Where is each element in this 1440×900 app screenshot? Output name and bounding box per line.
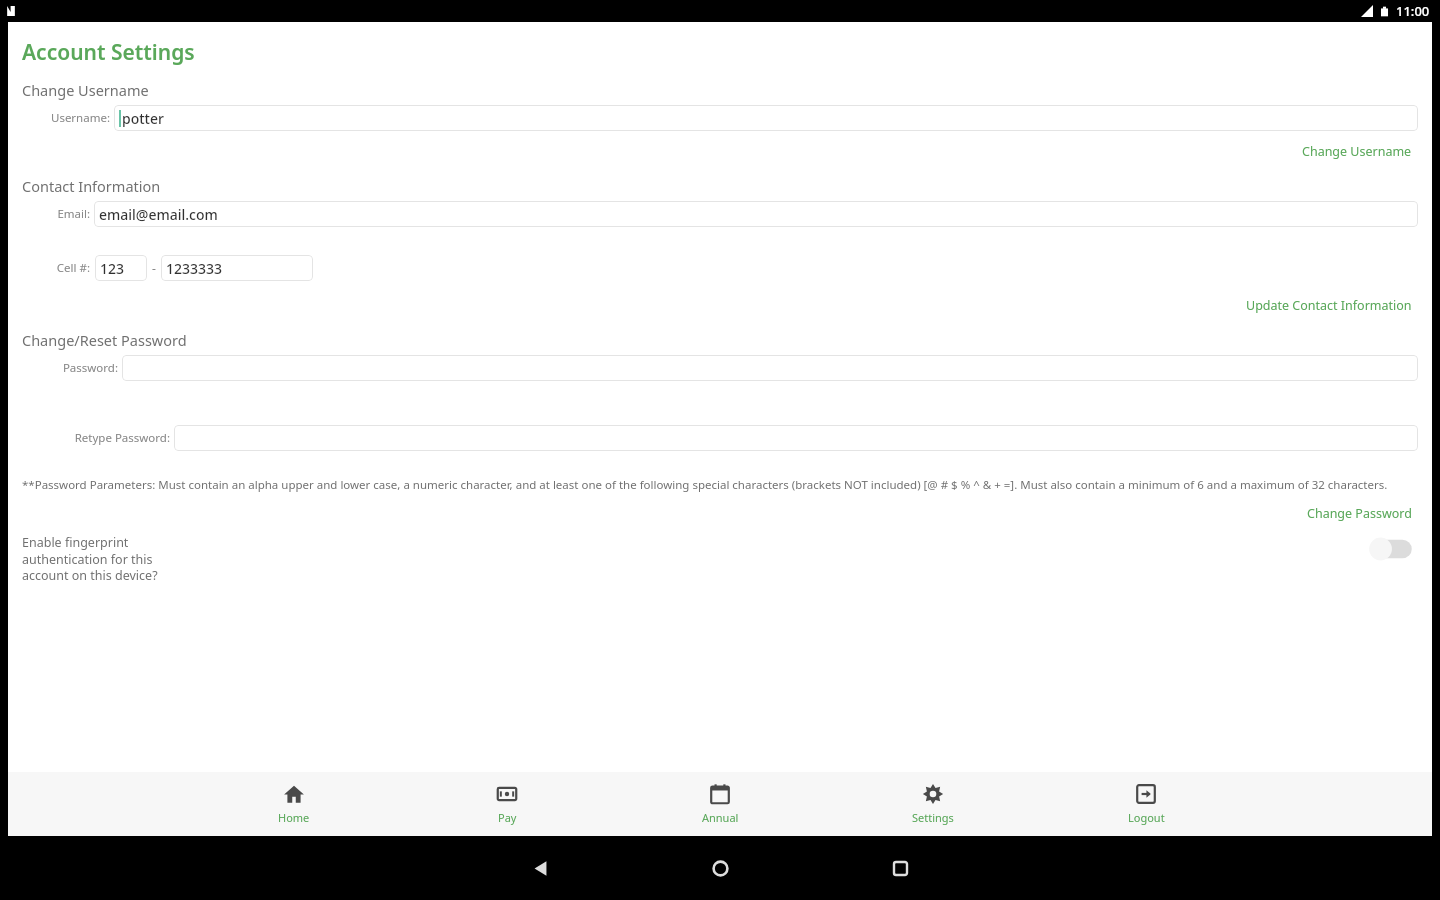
staticText: Annual xyxy=(702,810,739,825)
button[interactable]: potter xyxy=(114,105,1418,131)
staticText: 11:00 xyxy=(1396,2,1430,20)
staticText: Retype Password: xyxy=(22,430,170,446)
button[interactable]: email@email.com xyxy=(94,201,1418,227)
staticText: Cell #: xyxy=(22,260,90,276)
button[interactable]: Logout xyxy=(1110,777,1182,831)
staticText: Enable fingerprint authentication for th… xyxy=(22,534,158,583)
staticText: Logout xyxy=(1128,810,1165,825)
staticText: email@email.com xyxy=(99,205,218,224)
staticText: Change Username xyxy=(1302,143,1412,160)
staticText: 1233333 xyxy=(166,259,223,278)
staticText: Username: xyxy=(22,110,110,126)
button[interactable] xyxy=(174,425,1418,451)
staticText: Account Settings xyxy=(22,38,195,67)
button[interactable]: 1233333 xyxy=(161,255,313,281)
staticText: - xyxy=(152,260,156,276)
button[interactable]: Home xyxy=(706,854,734,882)
button[interactable]: Recent apps xyxy=(886,854,914,882)
button[interactable]: Settings xyxy=(897,777,969,831)
staticText: Contact Information xyxy=(22,176,161,196)
staticText: Change Username xyxy=(22,80,149,100)
button[interactable] xyxy=(122,355,1418,381)
button[interactable]: Pay xyxy=(471,777,543,831)
button[interactable]: Annual xyxy=(684,777,756,831)
button[interactable]: Enable fingerprint authentication xyxy=(1366,534,1418,564)
staticText: Settings xyxy=(912,810,954,825)
staticText: 123 xyxy=(100,259,125,278)
button[interactable]: Home xyxy=(258,777,330,831)
button[interactable]: Back xyxy=(526,854,554,882)
staticText: Email: xyxy=(22,206,90,222)
button[interactable]: Change Password xyxy=(1307,503,1432,524)
button[interactable]: 123 xyxy=(95,255,147,281)
staticText: **Password Parameters: Must contain an a… xyxy=(22,477,1388,493)
staticText: Home xyxy=(278,810,310,825)
staticText: Pay xyxy=(498,810,517,825)
staticText: Password: xyxy=(22,360,118,376)
button[interactable]: Change Username xyxy=(1302,141,1432,162)
staticText: Change/Reset Password xyxy=(22,330,187,350)
button[interactable]: Update Contact Information xyxy=(1246,295,1432,316)
staticText: Update Contact Information xyxy=(1246,297,1412,314)
staticText: potter xyxy=(122,109,164,128)
staticText: Change Password xyxy=(1307,505,1412,522)
